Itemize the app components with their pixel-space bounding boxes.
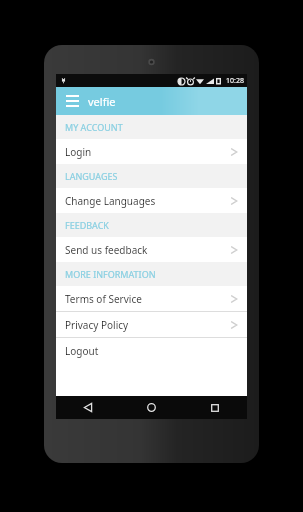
staticText: LANGUAGES	[65, 170, 118, 182]
staticText: Login	[65, 145, 92, 159]
staticText: velfie	[88, 94, 116, 109]
staticText: 10:28	[226, 76, 244, 86]
button[interactable]: Recent apps	[183, 396, 247, 419]
button[interactable]: Change Languages	[56, 188, 247, 213]
staticText: Privacy Policy	[65, 318, 129, 332]
button[interactable]: Privacy Policy	[56, 312, 247, 337]
staticText: Logout	[65, 344, 99, 358]
staticText: Change Languages	[65, 194, 156, 208]
button[interactable]: Open navigation drawer	[61, 90, 83, 112]
button[interactable]: Terms of Service	[56, 286, 247, 311]
button[interactable]: Send us feedback	[56, 237, 247, 262]
button[interactable]: Home	[119, 396, 183, 419]
staticText: MORE INFORMATION	[65, 268, 156, 280]
button[interactable]: Logout	[56, 338, 247, 363]
staticText: MY ACCOUNT	[65, 121, 123, 133]
button[interactable]: Back	[56, 396, 119, 419]
staticText: Terms of Service	[65, 292, 142, 306]
staticText: FEEDBACK	[65, 219, 109, 231]
button[interactable]: Login	[56, 139, 247, 164]
staticText: Send us feedback	[65, 243, 148, 257]
